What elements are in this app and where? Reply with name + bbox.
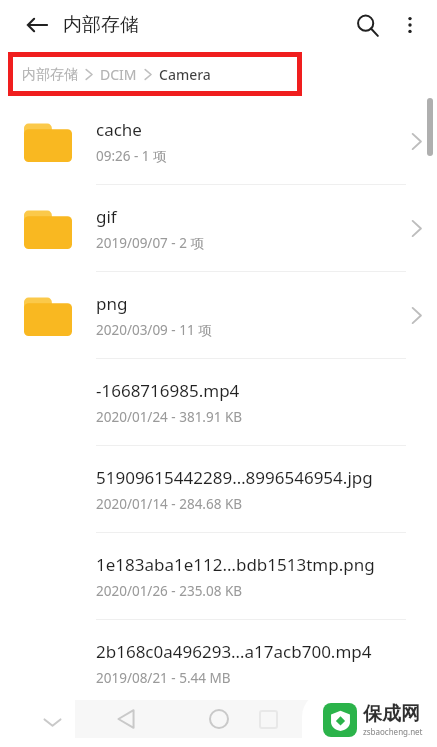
staticText: 2b168c0a496293…a17acb700.mp4	[96, 640, 372, 663]
staticText: zsbaocheng.net	[363, 726, 423, 737]
staticText: 09:26 - 1 项	[96, 147, 167, 165]
staticText: gif	[96, 205, 117, 228]
button[interactable]: 51909615442289…8996546954.jpg	[0, 446, 437, 533]
staticText: 保成网	[363, 702, 420, 726]
button[interactable]: Search	[345, 3, 389, 47]
staticText: 2019/08/21 - 5.44 MB	[96, 669, 231, 687]
staticText: 2020/01/14 - 284.68 KB	[96, 495, 243, 513]
staticText: Camera	[159, 65, 211, 84]
button[interactable]: png	[0, 272, 437, 359]
button[interactable]: cache	[0, 98, 437, 185]
staticText: -1668716985.mp4	[96, 379, 240, 402]
staticText: 51909615442289…8996546954.jpg	[96, 466, 373, 489]
staticText: png	[96, 292, 128, 315]
button[interactable]: Collapse	[30, 700, 74, 744]
button[interactable]: Recents	[248, 700, 288, 738]
button[interactable]: gif	[0, 185, 437, 272]
button[interactable]: Back	[103, 700, 149, 738]
staticText: 2019/09/07 - 2 项	[96, 234, 204, 252]
button[interactable]: 1e183aba1e112…bdb1513tmp.png	[0, 533, 437, 620]
staticText: 2020/03/09 - 11 项	[96, 321, 212, 339]
button[interactable]: 内部存储	[22, 65, 211, 84]
staticText: cache	[96, 118, 142, 141]
button[interactable]: Home	[196, 700, 242, 738]
button[interactable]: More options	[389, 4, 431, 46]
staticText: 2020/01/26 - 235.08 KB	[96, 582, 243, 600]
button[interactable]: 2b168c0a496293…a17acb700.mp4	[0, 620, 437, 707]
staticText: 内部存储	[63, 13, 139, 37]
button[interactable]: -1668716985.mp4	[0, 359, 437, 446]
staticText: 1e183aba1e112…bdb1513tmp.png	[96, 553, 375, 576]
staticText: 内部存储	[22, 66, 78, 84]
staticText: 2020/01/24 - 381.91 KB	[96, 408, 243, 426]
button[interactable]: Back	[14, 2, 60, 48]
staticText: DCIM	[100, 65, 137, 84]
